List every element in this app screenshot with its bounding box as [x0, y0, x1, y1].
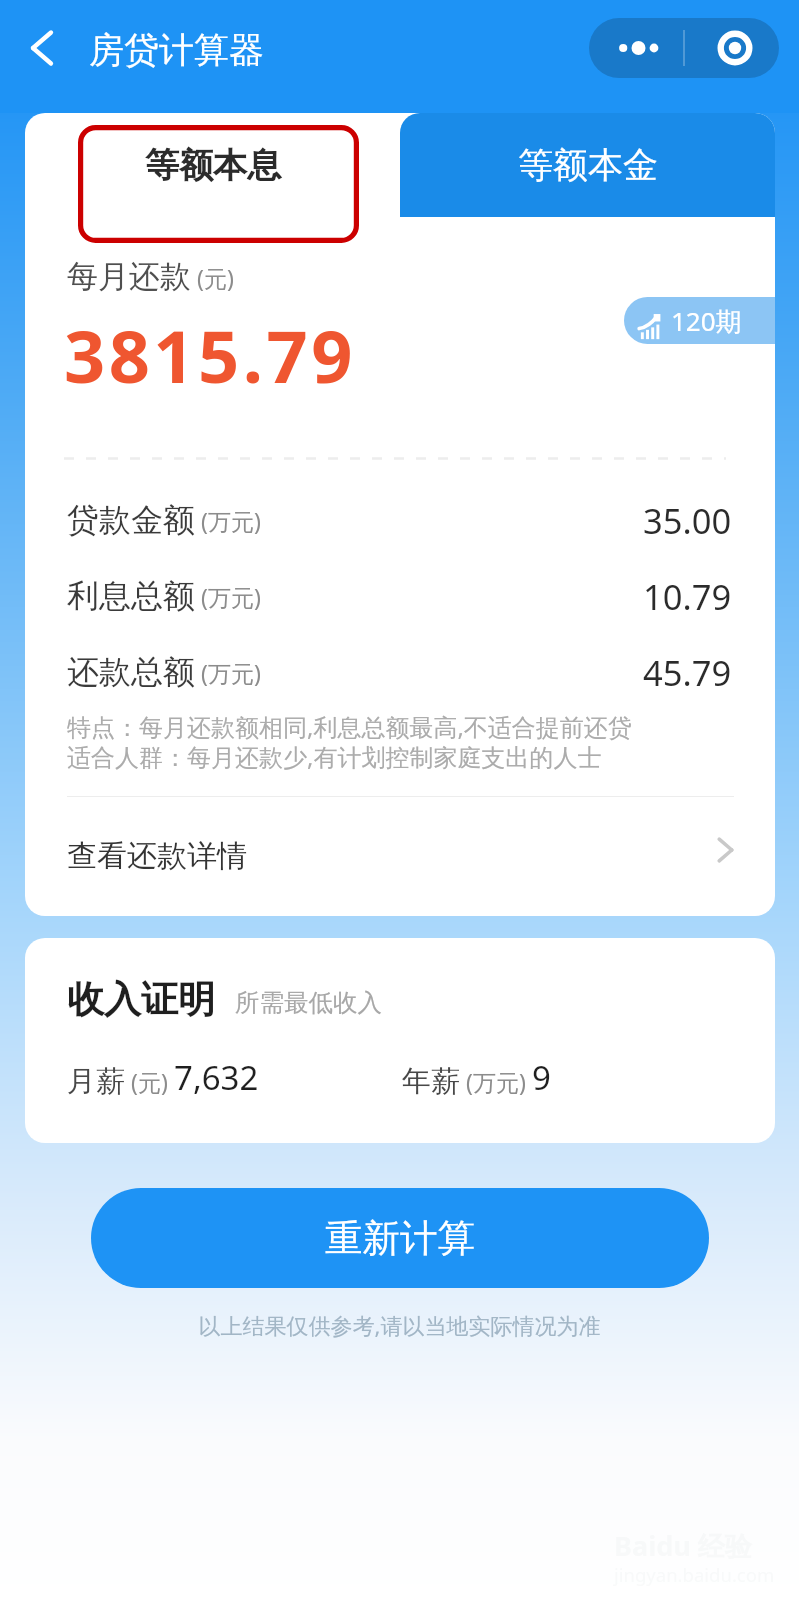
staticText: 45.79 — [643, 649, 732, 696]
staticText: 等额本息 — [145, 144, 281, 187]
staticText: 每月还款 — [67, 257, 191, 296]
staticText: (万元) — [195, 581, 261, 612]
staticText: 120期 — [671, 303, 742, 339]
staticText: (万元) — [460, 1066, 532, 1097]
staticText: 以上结果仅供参考,请以当地实际情况为准 — [0, 1310, 799, 1340]
staticText: 月薪 — [67, 1063, 125, 1100]
staticText: 重新计算 — [325, 1215, 475, 1262]
staticText: 查看还款详情 — [67, 837, 247, 875]
staticText: (万元) — [195, 505, 261, 536]
staticText: 还款总额 — [67, 652, 195, 692]
staticText: 适合人群：每月还款少,有计划控制家庭支出的人士 — [67, 740, 602, 773]
button[interactable]: Back — [14, 20, 70, 76]
staticText: 房贷计算器 — [89, 28, 264, 72]
staticText: 年薪 — [402, 1063, 460, 1100]
staticText: 3815.79 — [64, 306, 356, 404]
staticText: 贷款金额 — [67, 500, 195, 540]
staticText: 收入证明 — [67, 976, 215, 1023]
button[interactable]: 等额本息 — [25, 113, 400, 217]
staticText: (万元) — [195, 657, 261, 688]
staticText: 等额本金 — [518, 143, 658, 187]
staticText: 9 — [532, 1055, 551, 1100]
button[interactable]: 查看还款详情 — [25, 796, 775, 916]
staticText: (元) — [125, 1066, 174, 1097]
button[interactable]: 等额本金 — [400, 113, 775, 217]
staticText: 利息总额 — [67, 576, 195, 616]
staticText: 7,632 — [174, 1055, 259, 1100]
staticText: 35.00 — [643, 497, 732, 544]
button[interactable]: 重新计算 — [91, 1188, 709, 1288]
staticText: (元) — [191, 262, 234, 293]
staticText: 所需最低收入 — [235, 987, 382, 1018]
button[interactable]: Close mini program — [684, 18, 779, 78]
staticText: 特点：每月还款额相同,利息总额最高,不适合提前还贷 — [67, 710, 632, 743]
staticText: 10.79 — [643, 573, 732, 620]
button[interactable]: More options — [589, 18, 684, 78]
